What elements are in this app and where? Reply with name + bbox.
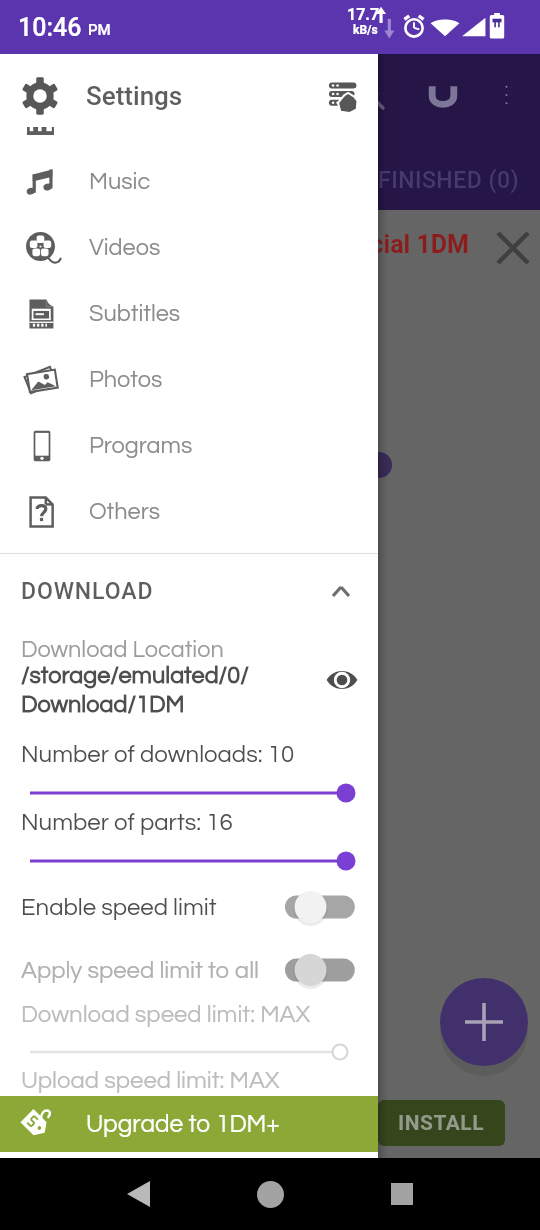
button[interactable]: Download Location [0, 634, 378, 722]
button[interactable]: Magnet link [415, 67, 471, 123]
staticText: Number of parts: 16 [21, 810, 233, 835]
staticText: Download speed limit: MAX [21, 1002, 311, 1027]
staticText: Upgrade to 1DM+ [86, 1112, 280, 1137]
staticText: Photos [89, 368, 163, 392]
button[interactable] [0, 850, 378, 872]
button[interactable]: Sort settings [315, 68, 371, 124]
button[interactable]: Settings [0, 54, 378, 138]
staticText: 17.7 [347, 5, 380, 24]
button[interactable]: UNFINISHED (0) [108, 150, 378, 210]
button[interactable]: Collapse section [315, 565, 367, 617]
button[interactable]: Photos [0, 347, 378, 413]
button[interactable]: Close [489, 224, 537, 272]
staticText: INSTALL [398, 1111, 485, 1136]
staticText: Enable speed limit [21, 895, 217, 920]
button[interactable]: Add download [440, 978, 528, 1066]
staticText: Official 1DM [330, 230, 469, 259]
staticText: kB/s [353, 23, 378, 37]
button[interactable]: Back [108, 1164, 168, 1224]
staticText: FINISHED (0) [378, 167, 520, 194]
staticText: DOWNLOAD [21, 578, 154, 605]
button[interactable]: Search [342, 67, 398, 123]
button[interactable]: Upgrade to 1DM+ [0, 1096, 378, 1152]
staticText: /storage/emulated/0/ Download/1DM [21, 664, 249, 717]
button[interactable]: Apply speed limit to all [0, 944, 378, 996]
button[interactable]: Others [0, 479, 378, 545]
button[interactable]: Music [0, 149, 378, 215]
staticText: Music [89, 170, 151, 194]
staticText: Number of downloads: 10 [21, 742, 295, 767]
button[interactable]: Enable speed limit [0, 881, 378, 933]
button[interactable]: Recents [372, 1164, 432, 1224]
button[interactable]: Home [240, 1164, 300, 1224]
staticText: 10:46 [18, 13, 82, 42]
staticText: Upload speed limit: MAX [21, 1068, 280, 1093]
button[interactable]: DOWNLOAD [0, 559, 378, 623]
button[interactable] [0, 782, 378, 804]
staticText: Settings [86, 81, 183, 111]
button[interactable]: Videos [0, 215, 378, 281]
staticText: Videos [89, 236, 161, 260]
button[interactable]: Show download location [314, 652, 370, 708]
button[interactable]: Subtitles [0, 281, 378, 347]
staticText: Apply speed limit to all [21, 958, 259, 983]
button[interactable]: INSTALL [378, 1100, 505, 1146]
staticText: Download Location [21, 638, 224, 662]
button[interactable]: FINISHED (0) [378, 150, 540, 210]
staticText: PM [88, 21, 111, 39]
staticText: Others [89, 500, 161, 524]
button[interactable]: Programs [0, 413, 378, 479]
staticText: Programs [89, 434, 193, 458]
staticText: Subtitles [89, 302, 181, 326]
button[interactable]: More options [478, 67, 534, 123]
